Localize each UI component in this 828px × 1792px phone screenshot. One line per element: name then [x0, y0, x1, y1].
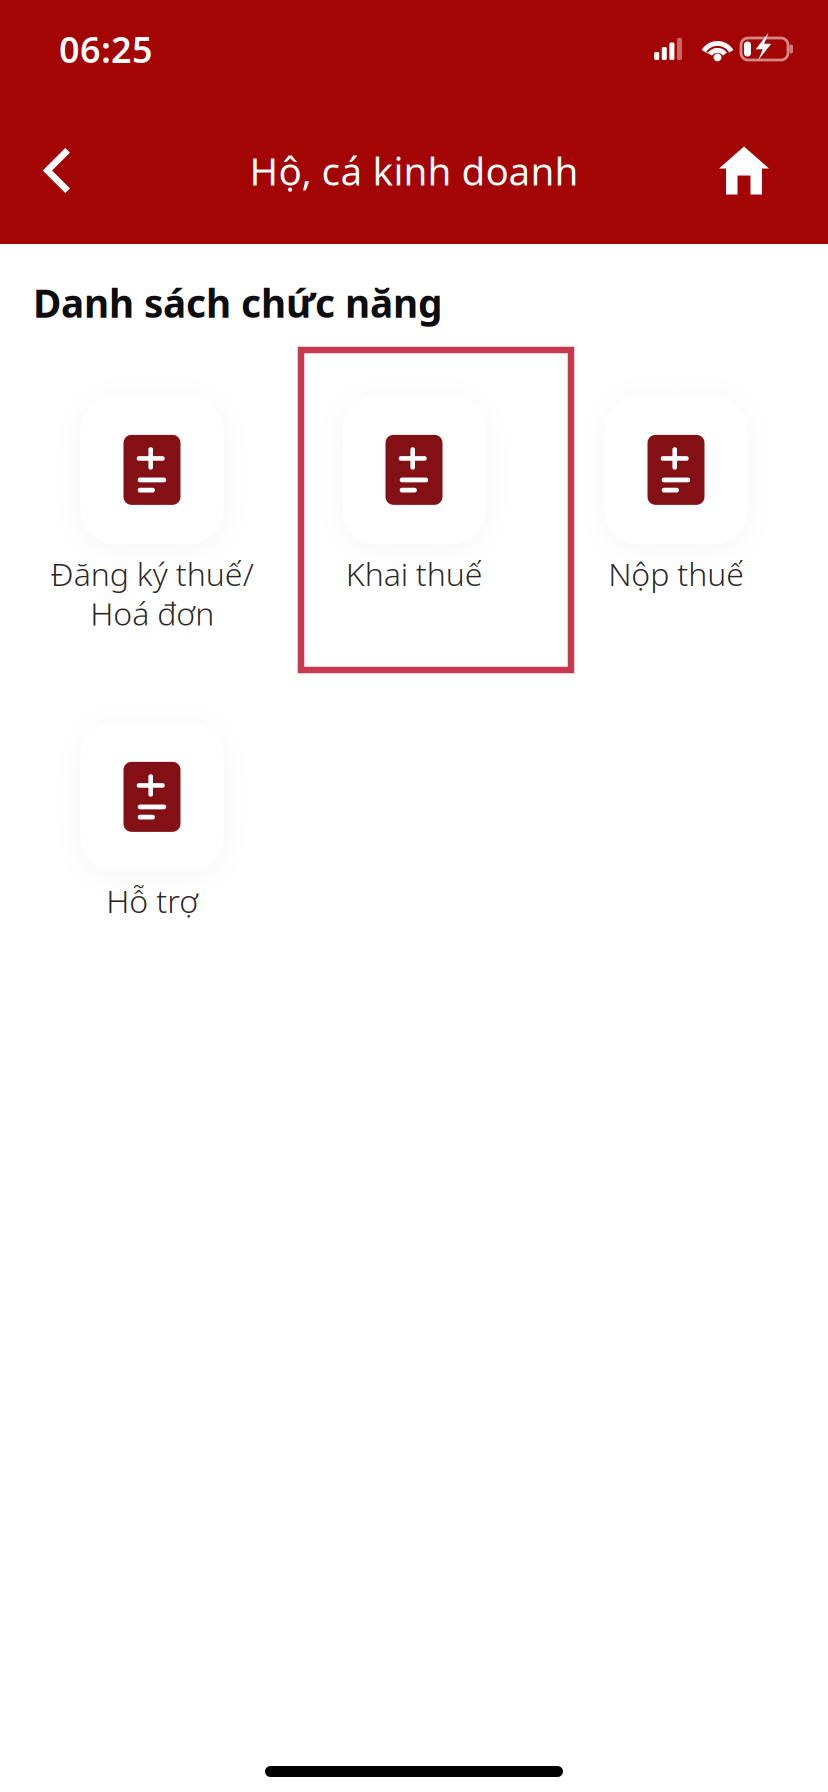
- button[interactable]: Đăng ký thuế/ Hoá đơn: [21, 395, 283, 690]
- staticText: Nộp thuế: [608, 552, 744, 595]
- staticText: Hộ, cá kinh doanh: [249, 145, 578, 196]
- button[interactable]: Nộp thuế: [545, 395, 807, 690]
- staticText: 06:25: [59, 25, 153, 73]
- staticText: Khai thuế: [345, 552, 482, 595]
- button[interactable]: Home: [692, 124, 796, 216]
- staticText: Danh sách chức năng: [33, 277, 442, 328]
- button[interactable]: Khai thuế: [283, 395, 545, 690]
- button[interactable]: Hỗ trợ: [21, 722, 283, 1017]
- button[interactable]: Back: [7, 124, 108, 216]
- staticText: Đăng ký thuế/ Hoá đơn: [50, 552, 253, 634]
- staticText: Hỗ trợ: [106, 879, 198, 922]
